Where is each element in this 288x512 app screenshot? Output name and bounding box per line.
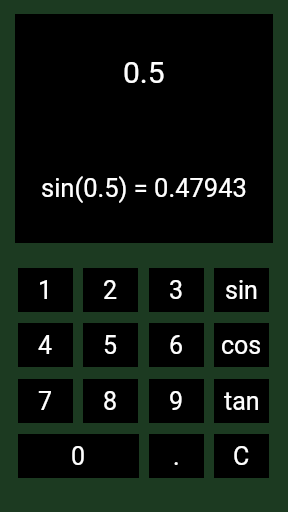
staticText: 5: [103, 331, 118, 360]
staticText: 7: [38, 387, 53, 416]
button[interactable]: sin: [214, 268, 269, 312]
button[interactable]: .: [149, 434, 204, 478]
button[interactable]: 5: [83, 323, 138, 367]
button[interactable]: 6: [149, 323, 204, 367]
staticText: .: [173, 442, 180, 471]
staticText: 6: [169, 331, 184, 360]
button[interactable]: 9: [149, 379, 204, 423]
staticText: 2: [103, 276, 118, 305]
button[interactable]: 0: [18, 434, 139, 478]
staticText: cos: [221, 331, 262, 360]
button[interactable]: cos: [214, 323, 269, 367]
staticText: 3: [169, 276, 184, 305]
button[interactable]: 8: [83, 379, 138, 423]
staticText: sin(0.5) = 0.47943: [41, 173, 247, 203]
button[interactable]: tan: [214, 379, 269, 423]
staticText: 4: [38, 331, 53, 360]
button[interactable]: C: [214, 434, 269, 478]
button[interactable]: 2: [83, 268, 138, 312]
staticText: 1: [38, 276, 53, 305]
staticText: tan: [224, 387, 260, 416]
staticText: 9: [169, 387, 184, 416]
staticText: sin: [225, 276, 258, 305]
button[interactable]: 7: [18, 379, 73, 423]
staticText: 0: [71, 442, 86, 471]
button[interactable]: 4: [18, 323, 73, 367]
staticText: 0.5: [123, 55, 165, 90]
button[interactable]: 1: [18, 268, 73, 312]
staticText: 8: [103, 387, 118, 416]
staticText: C: [233, 442, 250, 471]
button[interactable]: 3: [149, 268, 204, 312]
